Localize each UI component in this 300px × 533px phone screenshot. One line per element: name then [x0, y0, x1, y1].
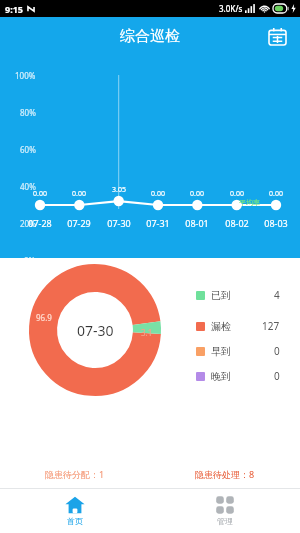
staticText: 0	[274, 369, 280, 383]
staticText: 100%	[15, 70, 36, 81]
staticText: 07-31	[146, 217, 170, 229]
staticText: 96.9	[36, 312, 52, 323]
staticText: 08-01	[185, 217, 209, 229]
button[interactable]: 早到	[196, 344, 280, 358]
staticText: 3.0K/s	[219, 3, 243, 14]
staticText: 0.00	[72, 189, 86, 199]
staticText: 早到	[211, 345, 231, 358]
staticText: 首页	[67, 516, 83, 526]
staticText: 0	[274, 344, 280, 358]
staticText: 已到	[211, 289, 231, 302]
staticText: 07-30	[77, 321, 114, 340]
staticText: 0.00	[151, 189, 165, 199]
staticText: 60%	[20, 144, 36, 155]
button[interactable]: 已到	[196, 288, 280, 302]
button[interactable]: 漏检	[196, 319, 280, 333]
staticText: 07-30	[107, 217, 131, 229]
staticText: 0.00	[33, 189, 47, 199]
staticText: 晚到	[211, 370, 231, 383]
staticText: 07-29	[67, 217, 91, 229]
staticText: 隐患待分配：1	[45, 468, 105, 480]
staticText: 08-02	[225, 217, 249, 229]
staticText: 40%	[20, 181, 36, 192]
staticText: 综合巡检	[120, 27, 180, 46]
staticText: 07-28	[28, 217, 52, 229]
staticText: 0%	[24, 255, 36, 266]
staticText: 08-03	[264, 217, 288, 229]
staticText: 80%	[20, 107, 36, 118]
staticText: 平均率	[239, 198, 260, 207]
staticText: 3.1	[141, 327, 153, 338]
staticText: 管理	[217, 516, 233, 526]
button[interactable]: Manage	[150, 496, 300, 526]
staticText: 隐患待处理：8	[195, 468, 255, 480]
staticText: 9:15	[5, 3, 23, 15]
button[interactable]: 晚到	[196, 369, 280, 383]
staticText: 0.00	[269, 189, 283, 199]
staticText: 20%	[20, 218, 36, 229]
staticText: 127	[262, 319, 280, 333]
button[interactable]: Calendar	[262, 21, 292, 51]
button[interactable]: 隐患待分配：1	[0, 468, 150, 480]
staticText: 4	[274, 288, 280, 302]
staticText: 0.00	[230, 189, 244, 199]
button[interactable]: 隐患待处理：8	[150, 468, 300, 480]
staticText: 漏检	[211, 320, 231, 333]
staticText: 3.05	[112, 185, 126, 195]
staticText: 0.00	[190, 189, 204, 199]
button[interactable]: Home	[0, 496, 150, 526]
